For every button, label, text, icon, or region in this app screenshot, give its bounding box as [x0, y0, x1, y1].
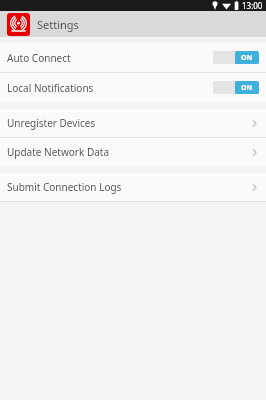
staticText: Local Notifications — [7, 81, 94, 95]
staticText: ON — [241, 83, 253, 93]
button[interactable]: Update Network Data — [0, 138, 266, 166]
button[interactable]: Toggle, on — [213, 51, 259, 64]
staticText: Auto Connect — [7, 51, 71, 65]
staticText: Submit Connection Logs — [7, 180, 122, 194]
button[interactable]: Local Notifications — [0, 73, 266, 102]
button[interactable]: App logo, navigate up — [7, 13, 30, 36]
staticText: 13:00 — [242, 0, 263, 11]
staticText: ON — [241, 53, 253, 63]
button[interactable]: Unregister Devices — [0, 109, 266, 137]
button[interactable]: Submit Connection Logs — [0, 173, 266, 201]
staticText: Settings — [37, 17, 79, 32]
button[interactable]: Toggle, on — [213, 81, 259, 94]
staticText: Update Network Data — [7, 145, 110, 159]
button[interactable]: Auto Connect — [0, 43, 266, 72]
staticText: Unregister Devices — [7, 116, 96, 130]
